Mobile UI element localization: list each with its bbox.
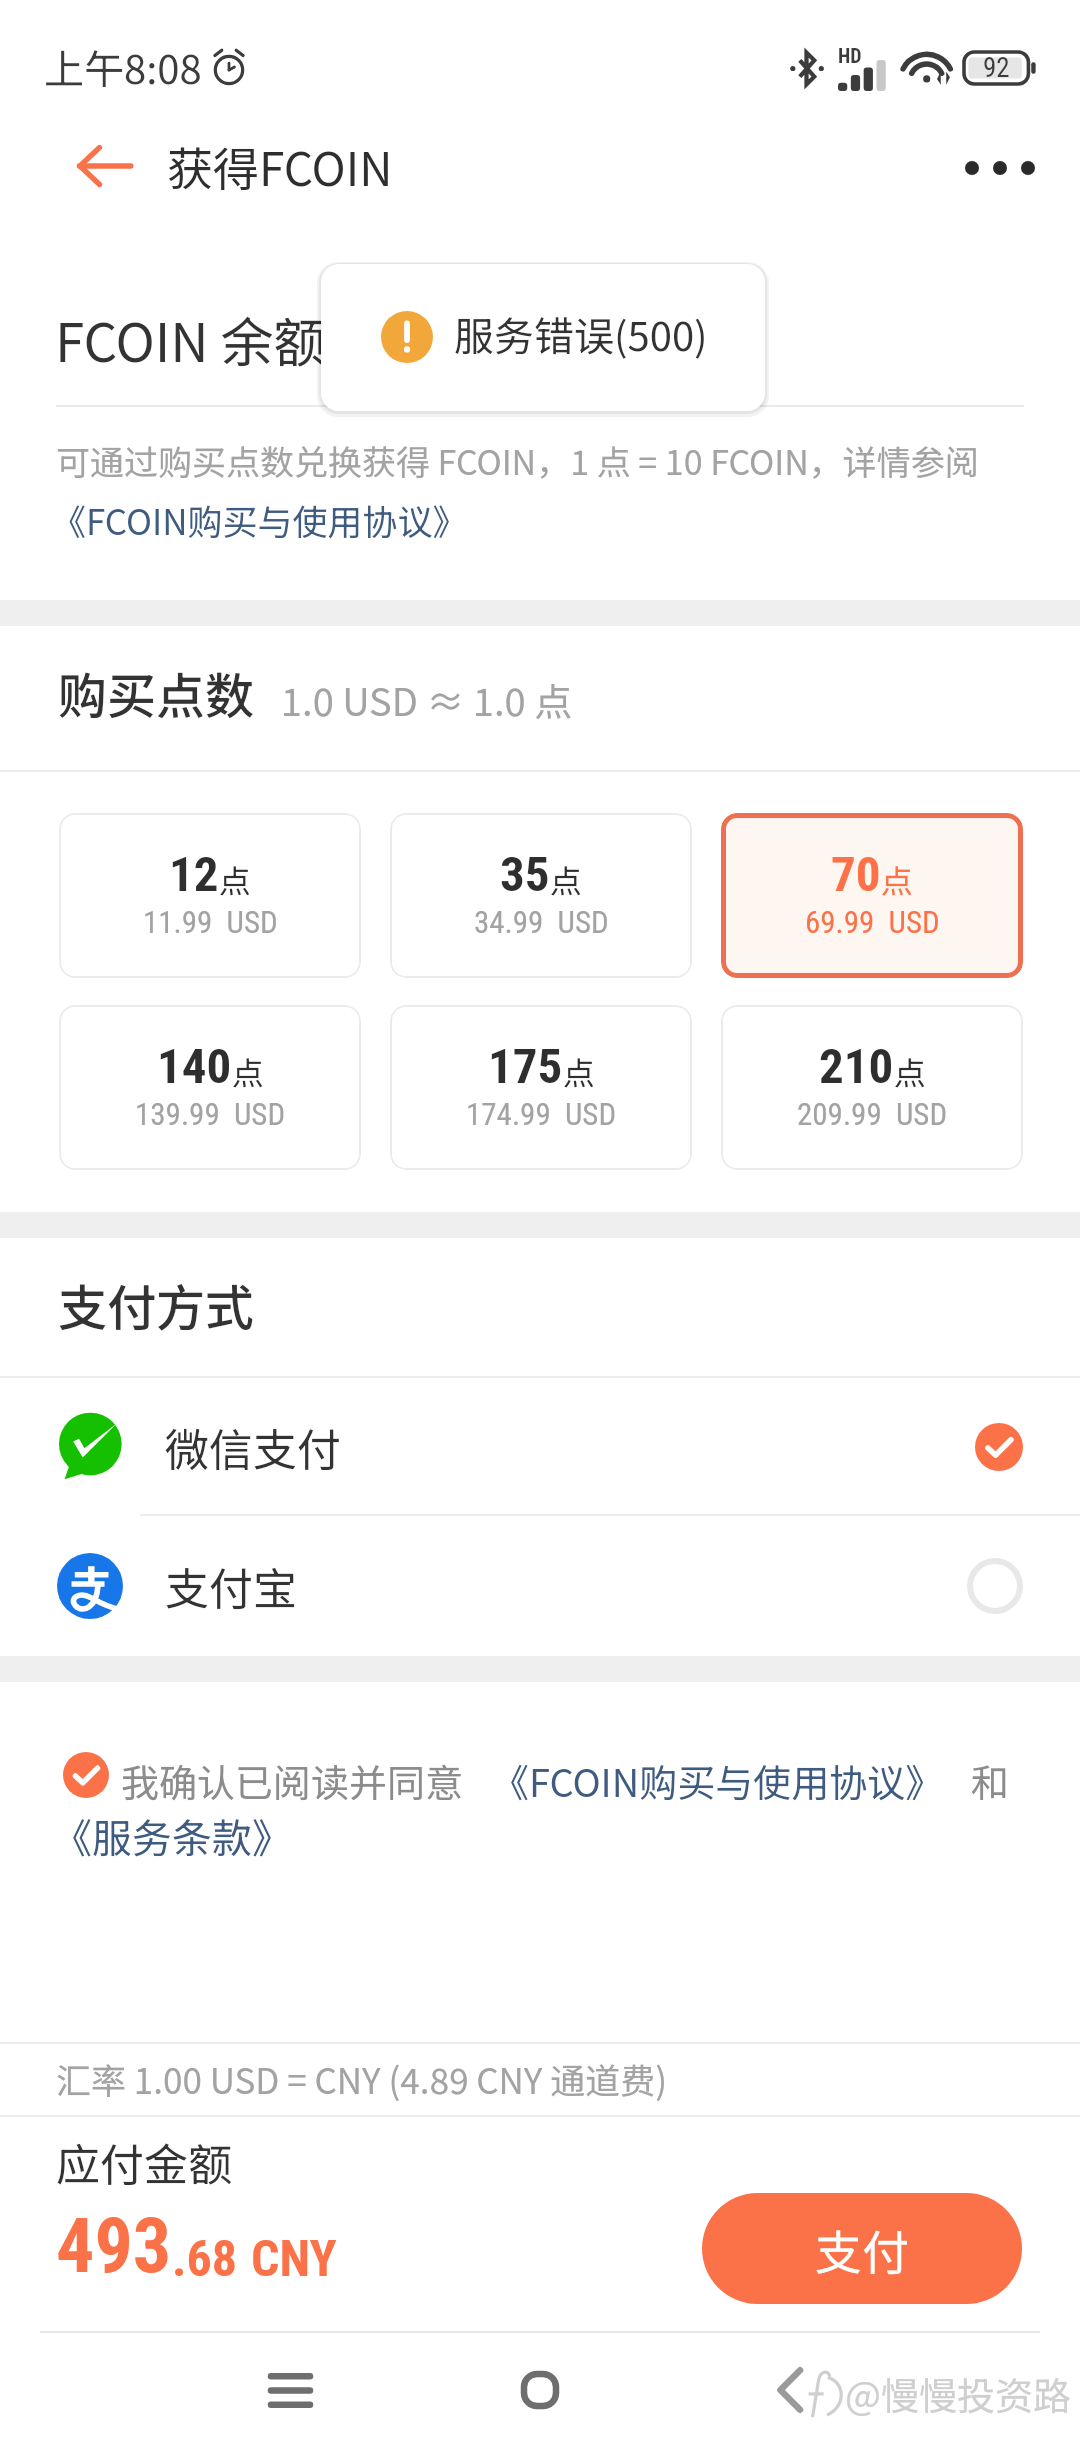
button[interactable]: More options [962,130,1038,206]
button[interactable]: Agree to terms [63,1752,109,1798]
staticText: .68 [172,2230,238,2289]
staticText: 点 [219,856,252,902]
staticText: 70 [831,846,881,903]
staticText: 140 [157,1038,232,1095]
staticText: 点 [563,1048,596,1094]
button[interactable]: 支付宝 [0,1516,1080,1656]
staticText: 493 [56,2201,172,2290]
staticText: 点 [881,856,914,902]
staticText: 汇率 1.00 USD = CNY (4.89 CNY 通道费) [56,2053,668,2104]
staticText: 69.99 USD [805,904,940,940]
button[interactable]: Home [482,2352,598,2428]
button[interactable]: 210 [721,1005,1023,1170]
staticText: 34.99 USD [474,904,609,940]
staticText: @慢慢投资路 [845,2366,1071,2421]
staticText: 和 [971,1753,1010,1808]
staticText: 获得FCOIN [167,133,393,200]
button[interactable]: 12 [59,813,361,978]
staticText: 92 [983,52,1010,84]
staticText: 购买点数 [58,657,255,728]
staticText: 支付宝 [165,1554,297,1618]
button[interactable]: 140 [59,1005,361,1170]
staticText: 点 [550,856,583,902]
staticText: 应付金额 [56,2130,232,2194]
staticText: 1.0 USD ≈ 1.0 点 [281,672,573,727]
button[interactable]: 35 [390,813,692,978]
staticText: FCOIN 余额 [55,301,327,378]
staticText: 服务错误(500) [454,305,708,363]
button[interactable]: 《服务条款》 [52,1807,292,1865]
staticText: 我确认已阅读并同意 [121,1753,464,1808]
staticText: 上午8:08 [44,38,202,96]
button[interactable]: Back [732,2352,848,2428]
staticText: 174.99 USD [466,1096,617,1132]
button[interactable]: 175 [390,1005,692,1170]
button[interactable]: 《FCOIN购买与使用协议》 [51,494,468,545]
staticText: 210 [819,1038,894,1095]
staticText: 12 [169,846,219,903]
button[interactable]: 《FCOIN购买与使用协议》 [491,1753,944,1808]
staticText: 可通过购买点数兑换获得 FCOIN，1 点 = 10 FCOIN，详情参阅 [56,436,979,485]
button[interactable]: 微信支付 [0,1378,1080,1516]
staticText: 微信支付 [165,1415,341,1479]
button[interactable]: 70 [721,813,1023,978]
staticText: 支付方式 [58,1269,255,1340]
button[interactable]: 支付 [702,2193,1022,2304]
button[interactable]: Recent apps [232,2352,348,2428]
staticText: CNY [251,2230,337,2289]
staticText: HD [838,44,862,67]
button[interactable]: Back [68,130,140,202]
staticText: 11.99 USD [143,904,278,940]
staticText: 209.99 USD [797,1096,948,1132]
staticText: 支付 [815,2215,909,2283]
staticText: 点 [894,1048,927,1094]
staticText: 点 [232,1048,265,1094]
staticText: 35 [500,846,550,903]
staticText: 175 [488,1038,563,1095]
staticText: 139.99 USD [135,1096,286,1132]
